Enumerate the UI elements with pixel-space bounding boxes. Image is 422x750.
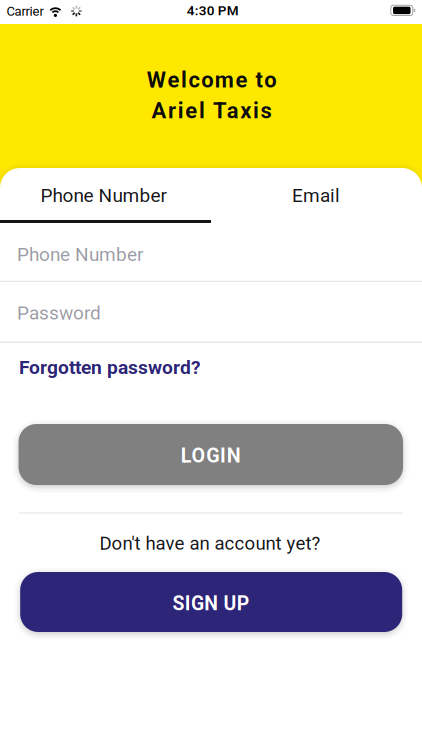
button[interactable]: Phone Number [17,226,401,282]
staticText: Password [17,302,101,324]
staticText: Welcome to [147,67,276,93]
button[interactable]: SIGN UP [20,572,402,632]
staticText: Carrier [6,4,43,19]
button[interactable]: LOGIN [19,424,403,485]
staticText: Ariel Taxis [151,98,271,124]
staticText: Forgotten password? [19,356,201,379]
button[interactable]: Forgotten password? [19,347,403,387]
button[interactable]: Phone Number [0,174,209,216]
staticText: Email [292,184,340,207]
button[interactable]: Email [210,174,421,216]
staticText: Don't have an account yet? [99,533,320,554]
staticText: SIGN UP [173,592,250,615]
staticText: Phone Number [17,243,143,266]
button[interactable]: Password [17,285,401,341]
staticText: Phone Number [40,184,166,207]
staticText: LOGIN [181,444,241,467]
staticText: 4:30 PM [187,3,239,19]
